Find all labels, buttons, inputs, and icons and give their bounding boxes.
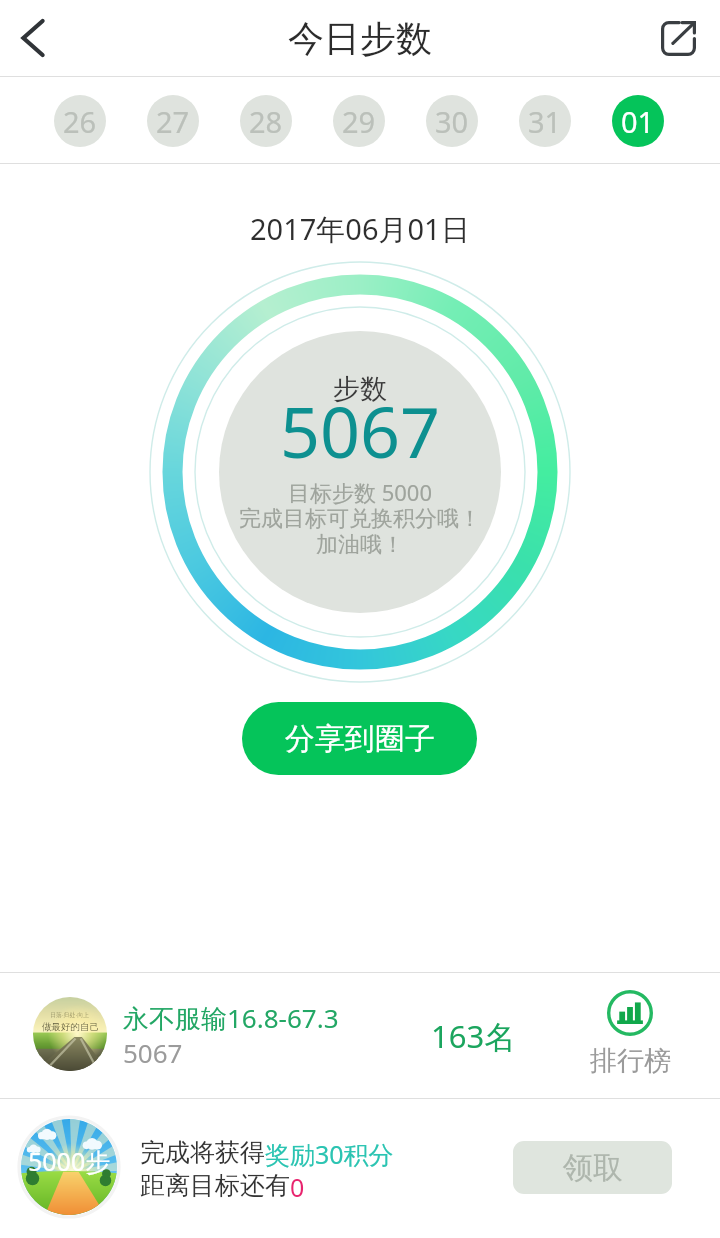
button[interactable]: 26 (54, 95, 106, 147)
button[interactable]: 31 (519, 95, 571, 147)
staticText: 29 (342, 102, 376, 141)
button[interactable]: 27 (147, 95, 199, 147)
staticText: 排行榜 (590, 1044, 671, 1078)
staticText: 奖励30积分 (265, 1137, 394, 1171)
staticText: 5067 (123, 1035, 183, 1070)
staticText: 步数 (333, 372, 387, 406)
staticText: 01 (621, 102, 655, 141)
staticText: 目标步数 5000 完成目标可兑换积分哦！ 加油哦！ (239, 477, 481, 559)
staticText: 2017年06月01日 (250, 209, 470, 249)
staticText: 永不服输16.8-67.3 (123, 1000, 339, 1036)
button[interactable]: Share (640, 0, 716, 76)
button[interactable]: 30 (426, 95, 478, 147)
staticText: 今日步数 (288, 16, 432, 61)
staticText: 做最好的自己 (42, 1021, 99, 1033)
staticText: 0 (290, 1170, 305, 1204)
staticText: 日落·归处·向上 (50, 1011, 90, 1019)
staticText: 领取 (563, 1149, 623, 1187)
staticText: 26 (63, 102, 97, 141)
button[interactable]: 01 (612, 95, 664, 147)
staticText: 5067 (280, 383, 441, 478)
staticText: 分享到圈子 (285, 720, 435, 758)
button[interactable]: 29 (333, 95, 385, 147)
staticText: 27 (156, 102, 190, 141)
staticText: 28 (249, 102, 283, 141)
button[interactable]: 排行榜 (580, 981, 680, 1091)
button[interactable]: 领取 (513, 1141, 672, 1194)
staticText: 距离目标还有 (140, 1170, 290, 1201)
button[interactable]: 日落·归处·向上 (0, 973, 720, 1098)
staticText: 163名 (431, 1015, 516, 1057)
staticText: 31 (528, 102, 562, 141)
staticText: 5000步 (28, 1144, 111, 1178)
staticText: 30 (435, 102, 469, 141)
staticText: 完成将获得 (140, 1137, 265, 1168)
button[interactable]: Back (0, 0, 66, 76)
button[interactable]: 分享到圈子 (242, 702, 477, 775)
button[interactable]: 28 (240, 95, 292, 147)
